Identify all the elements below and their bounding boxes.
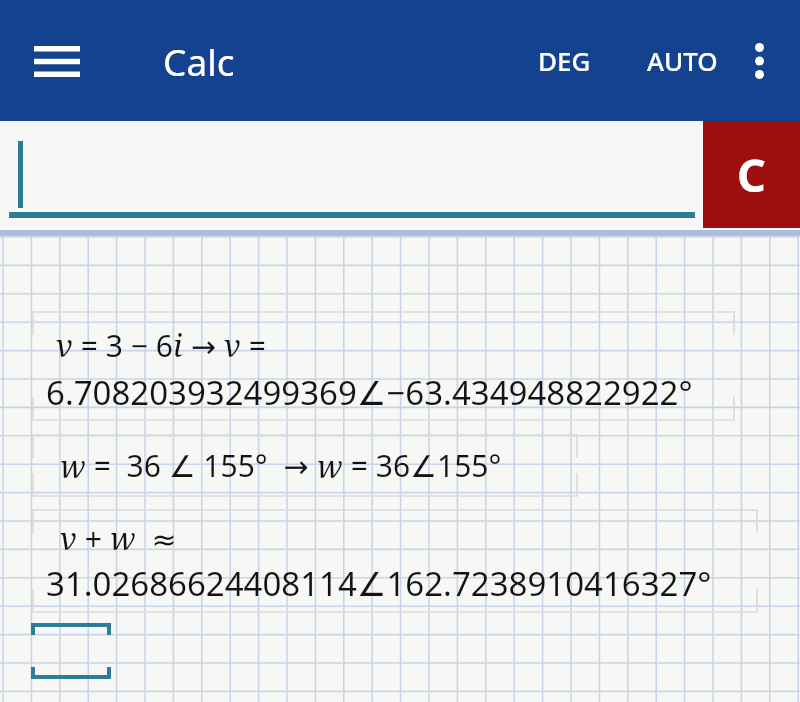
staticText: w [317, 445, 343, 487]
button[interactable]: v [32, 509, 758, 613]
staticText: = 36∠155° [343, 445, 502, 486]
button[interactable]: Empty expression field [31, 663, 111, 679]
staticText: = 36 ∠ 155° → [86, 445, 317, 486]
staticText: ≈ [136, 518, 177, 559]
staticText: w [110, 517, 136, 559]
button[interactable]: Empty expression field [31, 623, 111, 639]
staticText: v [56, 324, 73, 366]
button[interactable]: w [32, 434, 578, 497]
staticText: i [173, 324, 183, 366]
staticText: AUTO [647, 43, 718, 78]
staticText: Calc [163, 36, 235, 86]
staticText: v [60, 517, 77, 559]
staticText: v [224, 324, 241, 366]
staticText: + [77, 518, 110, 559]
staticText: DEG [538, 43, 591, 78]
staticText: = 3 − 6 [73, 325, 173, 366]
button[interactable]: AUTO [635, 27, 730, 94]
button[interactable]: C [703, 121, 800, 228]
staticText: 31.02686624408114∠162.7238910416327° [46, 561, 712, 606]
button[interactable]: Open navigation menu [20, 24, 94, 98]
staticText: w [60, 445, 86, 487]
staticText: C [737, 144, 766, 205]
button[interactable]: DEG [526, 27, 603, 94]
staticText: = [241, 325, 266, 366]
staticText: → [183, 325, 224, 366]
button[interactable]: More options [730, 32, 788, 90]
button[interactable]: v [32, 311, 735, 421]
staticText: 6.708203932499369∠−63.434948822922° [46, 370, 693, 415]
